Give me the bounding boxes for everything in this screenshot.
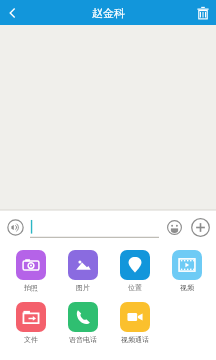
- staticText: 文件: [24, 335, 38, 344]
- staticText: 视频通话: [121, 335, 149, 344]
- staticText: 图片: [76, 283, 90, 292]
- button[interactable]: Voice input: [4, 216, 26, 238]
- button[interactable]: 语音电话: [60, 302, 106, 344]
- button[interactable]: 视频: [164, 250, 210, 292]
- button[interactable]: Emoji: [163, 216, 185, 238]
- button[interactable]: 拍照: [8, 250, 54, 292]
- button[interactable]: [30, 216, 159, 238]
- button[interactable]: 图片: [60, 250, 106, 292]
- staticText: 赵金科: [92, 6, 125, 20]
- staticText: 语音电话: [69, 335, 97, 344]
- staticText: 视频: [180, 283, 194, 292]
- button[interactable]: 视频通话: [112, 302, 158, 344]
- staticText: 拍照: [24, 283, 38, 292]
- button[interactable]: 文件: [8, 302, 54, 344]
- button[interactable]: Add attachment: [187, 214, 213, 240]
- button[interactable]: Back: [0, 0, 26, 25]
- button[interactable]: 位置: [112, 250, 158, 292]
- button[interactable]: Delete: [190, 0, 216, 25]
- staticText: 位置: [128, 283, 142, 292]
